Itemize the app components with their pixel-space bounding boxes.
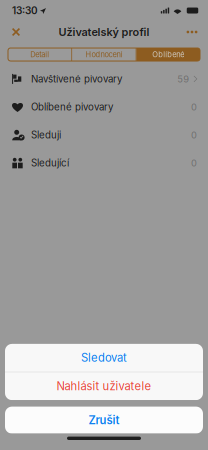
button[interactable]: Navštívené pivovary <box>0 65 208 93</box>
staticText: 59 <box>177 73 189 85</box>
staticText: Uživatelský profil <box>58 25 149 39</box>
staticText: Sleduji <box>31 129 61 141</box>
staticText: Nahlásit uživatele <box>56 379 151 393</box>
button[interactable]: More options <box>179 21 205 43</box>
button[interactable]: Close <box>4 21 28 43</box>
button[interactable]: Oblíbené pivovary <box>0 93 208 121</box>
staticText: Navštívené pivovary <box>31 73 122 85</box>
button[interactable]: Sledující <box>0 149 208 177</box>
staticText: 0 <box>191 157 197 169</box>
staticText: Zrušit <box>88 413 119 427</box>
button[interactable]: Sledovat <box>5 344 203 372</box>
staticText: Sledující <box>31 157 69 169</box>
button[interactable]: Oblíbené <box>137 48 200 61</box>
staticText: 0 <box>191 129 197 141</box>
staticText: Oblíbené pivovary <box>31 101 113 113</box>
staticText: Sledovat <box>81 351 127 365</box>
button[interactable]: Detail <box>8 48 71 61</box>
button[interactable]: Zrušit <box>5 407 203 434</box>
button[interactable]: Sleduji <box>0 121 208 149</box>
staticText: 13:30 <box>12 4 38 17</box>
staticText: Oblíbené <box>152 50 184 59</box>
button[interactable]: Nahlásit uživatele <box>5 372 203 400</box>
staticText: Detail <box>30 50 49 59</box>
staticText: Hodnocení <box>85 50 122 59</box>
staticText: 0 <box>191 101 197 113</box>
button[interactable]: Hodnocení <box>72 48 136 61</box>
